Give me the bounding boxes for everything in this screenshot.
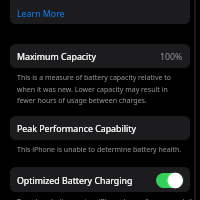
- button[interactable]: Maximum Capacity: [10, 44, 190, 68]
- staticText: Maximum Capacity: [17, 51, 97, 63]
- button[interactable]: Optimized Battery Charging toggle: [156, 173, 183, 188]
- button[interactable]: Peak Performance Capability: [10, 116, 190, 140]
- staticText: This iPhone is unable to determine batte…: [17, 145, 182, 155]
- button[interactable]: Learn More: [10, 0, 190, 24]
- staticText: To reduce battery aging, iPhone learns f…: [17, 197, 197, 200]
- staticText: This is a measure of battery capacity re…: [17, 73, 187, 105]
- staticText: Peak Performance Capability: [17, 123, 136, 135]
- staticText: Optimized Battery Charging: [17, 175, 133, 187]
- staticText: Learn More: [17, 8, 65, 20]
- staticText: 100%: [160, 51, 183, 63]
- button[interactable]: Optimized Battery Charging: [10, 167, 190, 192]
